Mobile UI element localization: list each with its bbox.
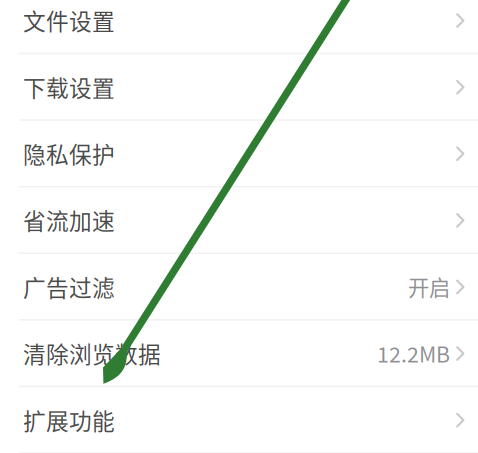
staticText: 开启 xyxy=(408,271,450,302)
staticText: 清除浏览数据 xyxy=(23,337,161,369)
staticText: 省流加速 xyxy=(23,203,115,236)
button[interactable]: 下载设置 xyxy=(0,54,478,121)
button[interactable]: 扩展功能 xyxy=(0,387,478,453)
staticText: 下载设置 xyxy=(23,70,115,103)
staticText: 文件设置 xyxy=(23,4,115,36)
button[interactable]: 广告过滤 xyxy=(0,254,478,321)
button[interactable]: 文件设置 xyxy=(0,0,478,54)
staticText: 扩展功能 xyxy=(23,403,115,436)
button[interactable]: 隐私保护 xyxy=(0,121,478,187)
staticText: 隐私保护 xyxy=(23,137,115,170)
button[interactable]: 省流加速 xyxy=(0,187,478,254)
button[interactable]: 清除浏览数据 xyxy=(0,321,478,387)
staticText: 12.2MB xyxy=(377,338,450,369)
staticText: 广告过滤 xyxy=(23,270,115,303)
